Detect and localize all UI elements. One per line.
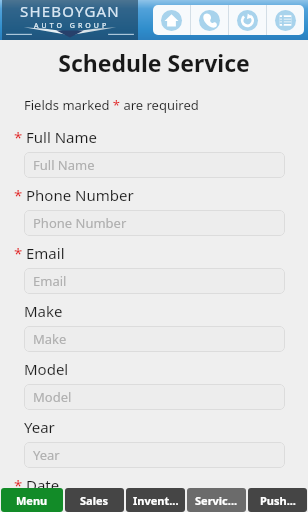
staticText: *	[14, 127, 23, 147]
staticText: Full Name	[26, 127, 97, 147]
button[interactable]: Year	[24, 442, 285, 468]
staticText: Make	[24, 301, 63, 321]
button[interactable]: Back	[229, 5, 266, 35]
button[interactable]: Email	[24, 268, 285, 294]
button[interactable]: Full Name	[24, 152, 285, 178]
staticText: *	[14, 475, 23, 488]
staticText: Date	[26, 475, 60, 488]
staticText: Year	[24, 417, 55, 437]
button[interactable]: Call	[191, 5, 228, 35]
staticText: Model	[24, 359, 69, 379]
button[interactable]: Phone Number	[24, 210, 285, 236]
staticText: Make	[33, 330, 67, 348]
button[interactable]: Make	[24, 326, 285, 352]
button[interactable]: Menu	[267, 5, 304, 35]
staticText: Schedule Service	[0, 47, 308, 78]
button[interactable]: Menu	[1, 488, 63, 512]
button[interactable]: Sales	[65, 488, 124, 512]
staticText: Menu	[16, 493, 48, 508]
button[interactable]: Servic...	[187, 488, 246, 512]
button[interactable]: Push...	[248, 488, 307, 512]
button[interactable]: Model	[24, 384, 285, 410]
staticText: Phone Number	[26, 185, 134, 205]
staticText: Email	[33, 272, 67, 290]
button[interactable]: Home	[153, 5, 190, 35]
staticText: Model	[33, 388, 72, 406]
staticText: Fields marked * are required	[24, 96, 199, 114]
staticText: Year	[33, 446, 60, 464]
staticText: Servic...	[195, 493, 238, 508]
staticText: SHEBOYGAN	[20, 1, 120, 21]
staticText: Phone Number	[33, 214, 127, 232]
staticText: Sales	[80, 493, 109, 508]
staticText: Full Name	[33, 156, 95, 174]
button[interactable]: Invent...	[126, 488, 185, 512]
staticText: Email	[26, 243, 65, 263]
staticText: Invent...	[133, 493, 179, 508]
staticText: *	[14, 243, 23, 263]
button[interactable]: Sheboygan Auto Group	[2, 0, 138, 40]
staticText: A U T O G R O U P	[34, 21, 107, 31]
staticText: Push...	[260, 493, 296, 508]
staticText: *	[14, 185, 23, 205]
